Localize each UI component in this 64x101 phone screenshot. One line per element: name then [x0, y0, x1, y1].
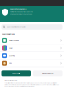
button[interactable]: Reset Search — [33, 70, 62, 76]
staticText: Size — [9, 62, 12, 64]
staticText: Search Pills — [12, 72, 20, 74]
staticText: No imprint needed — just pick the — [10, 11, 33, 13]
button[interactable]: Color — [0, 44, 64, 52]
button[interactable]: Select Shape — [0, 37, 64, 44]
staticText: Color — [9, 47, 13, 49]
staticText: Search Options — [2, 33, 15, 35]
button[interactable]: Search Pills — [1, 70, 31, 76]
button[interactable]: Size — [0, 60, 64, 67]
staticText: NOTE · IMPORTANT — [4, 79, 17, 81]
staticText: Search for your pill — [10, 8, 27, 10]
staticText: Reset Search — [42, 72, 53, 74]
staticText: This pill identifier is provided for inf… — [4, 82, 59, 87]
staticText: shape and colour you can see. — [10, 13, 32, 15]
staticText: Search by imprint or name — [7, 26, 26, 28]
staticText: Scoring — [9, 54, 15, 57]
button[interactable]: Scoring — [0, 52, 64, 60]
staticText: Select Shape — [9, 39, 19, 41]
